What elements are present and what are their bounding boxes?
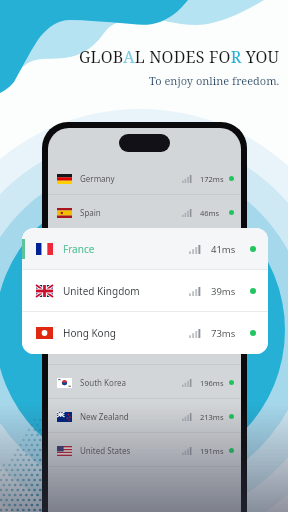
staticText: Hong Kong bbox=[80, 309, 123, 320]
staticText: New Zealand bbox=[80, 411, 129, 422]
staticText: United States bbox=[80, 445, 131, 456]
staticText: 73ms bbox=[200, 310, 220, 320]
staticText: 172ms bbox=[200, 174, 224, 184]
button[interactable]: United Kingdom bbox=[48, 263, 241, 297]
button[interactable]: New Zealand bbox=[48, 399, 241, 433]
staticText: 46ms bbox=[200, 208, 220, 218]
staticText: United Kingdom bbox=[63, 284, 140, 298]
button[interactable]: South Korea bbox=[48, 365, 241, 399]
staticText: 191ms bbox=[200, 446, 224, 456]
button[interactable]: United Kingdom bbox=[22, 270, 268, 312]
staticText: Spain bbox=[80, 207, 101, 218]
button[interactable]: Spain bbox=[48, 195, 241, 229]
button[interactable]: France bbox=[22, 228, 268, 270]
staticText: Hong Kong bbox=[63, 326, 116, 340]
button[interactable]: United States bbox=[48, 433, 241, 467]
staticText: France bbox=[63, 242, 95, 256]
staticText: To enjoy online freedom. bbox=[149, 73, 280, 88]
staticText: France bbox=[80, 241, 106, 252]
staticText: Germany bbox=[80, 173, 115, 184]
button[interactable]: Japan bbox=[48, 331, 241, 365]
staticText: 41ms bbox=[211, 243, 236, 256]
button[interactable]: Hong Kong bbox=[22, 312, 268, 354]
staticText: 213ms bbox=[200, 412, 224, 422]
staticText: South Korea bbox=[80, 377, 127, 388]
staticText: 73ms bbox=[211, 327, 236, 340]
button[interactable]: Hong Kong bbox=[48, 297, 241, 331]
staticText: GLOBAL NODES FOR YOU bbox=[79, 46, 280, 68]
staticText: 41ms bbox=[200, 242, 220, 252]
staticText: 39ms bbox=[211, 285, 236, 298]
button[interactable]: Germany bbox=[48, 161, 241, 195]
button[interactable]: France bbox=[48, 229, 241, 263]
staticText: 196ms bbox=[200, 378, 224, 388]
